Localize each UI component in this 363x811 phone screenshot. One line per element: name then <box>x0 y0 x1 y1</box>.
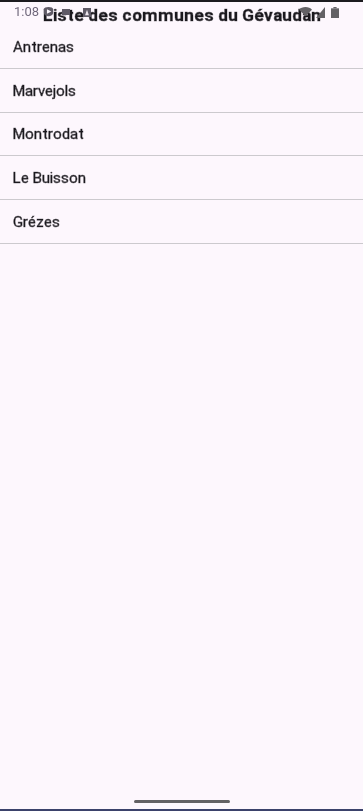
staticText: Grézes <box>13 213 60 231</box>
button[interactable]: Antrenas <box>0 25 363 69</box>
button[interactable]: Liste des communes du Gévaudan <box>0 0 363 25</box>
staticText: Montrodat <box>13 125 84 143</box>
staticText: 1:08 <box>14 4 40 19</box>
staticText: Grézes <box>13 213 60 231</box>
button[interactable]: Grézes <box>0 200 363 244</box>
staticText: Marvejols <box>13 82 77 100</box>
button[interactable]: Montrodat <box>0 112 363 156</box>
staticText: Le Buisson <box>13 169 86 187</box>
button[interactable]: Le Buisson <box>0 156 363 200</box>
staticText: Liste des communes du Gévaudan <box>43 5 321 25</box>
staticText: Le Buisson <box>13 169 86 187</box>
button[interactable]: Marvejols <box>0 69 363 113</box>
staticText: Antrenas <box>13 38 74 56</box>
staticText: Montrodat <box>13 125 84 143</box>
staticText: Marvejols <box>13 82 77 100</box>
staticText: Antrenas <box>13 38 74 56</box>
staticText: Liste des communes du Gévaudan <box>43 5 321 25</box>
